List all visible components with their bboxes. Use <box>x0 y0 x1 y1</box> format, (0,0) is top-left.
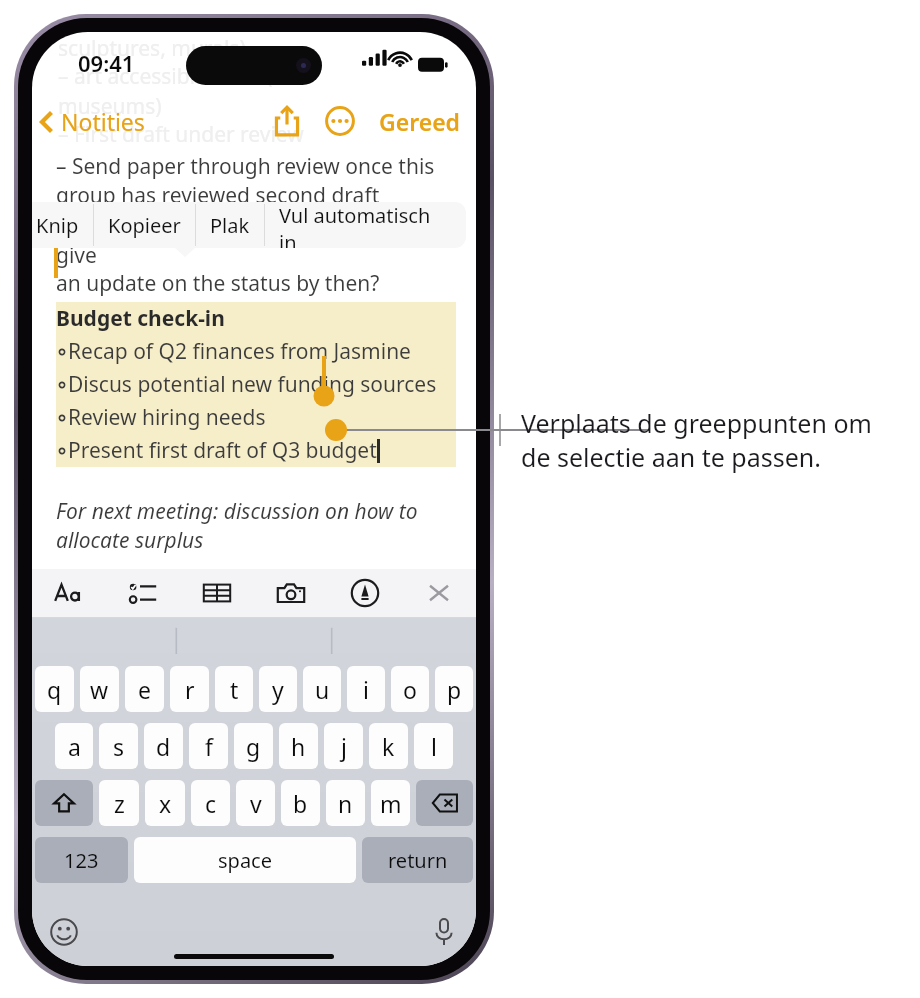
button[interactable]: Knip <box>32 202 93 248</box>
button[interactable]: r <box>170 666 209 712</box>
staticText: j <box>341 731 347 762</box>
staticText: an update on the status by then? <box>56 269 380 298</box>
button[interactable]: u <box>303 666 341 712</box>
button[interactable]: d <box>144 723 183 769</box>
staticText: – First draft under review <box>58 120 304 149</box>
button[interactable]: Vul automatisch in <box>265 202 466 248</box>
button[interactable]: h <box>279 723 318 769</box>
staticText: Discus potential new funding sources <box>68 370 437 399</box>
staticText: Plak <box>210 212 250 239</box>
button[interactable]: c <box>191 780 230 826</box>
button[interactable]: Emoji <box>46 914 82 950</box>
staticText: Verplaats de greeppunten om de selectie … <box>521 406 920 474</box>
button[interactable]: s <box>99 723 138 769</box>
staticText: f <box>205 731 213 762</box>
button[interactable]: e <box>125 666 164 712</box>
staticText: g <box>246 731 261 762</box>
button[interactable]: n <box>326 780 365 826</box>
staticText: For next meeting: discussion on how to <box>56 497 418 526</box>
button[interactable]: m <box>371 780 410 826</box>
staticText: Present first draft of Q3 budget <box>68 436 377 465</box>
button[interactable]: Sluit <box>420 574 458 612</box>
staticText: – Present to city council in Q4! Can you… <box>56 210 464 269</box>
button[interactable]: g <box>234 723 273 769</box>
button[interactable]: Meer <box>321 102 359 140</box>
button[interactable]: t <box>215 666 253 712</box>
button[interactable]: Dicteren <box>426 914 462 950</box>
staticText: s <box>113 731 125 762</box>
staticText: n <box>338 788 353 819</box>
button[interactable]: Deel <box>269 100 305 142</box>
button[interactable]: q <box>35 666 74 712</box>
staticText: Kopieer <box>108 212 181 239</box>
button[interactable]: w <box>80 666 119 712</box>
staticText: a <box>68 731 81 762</box>
button[interactable]: Markeringen <box>346 574 384 612</box>
staticText: museums) <box>58 92 162 121</box>
staticText: c <box>205 788 217 819</box>
button[interactable]: b <box>281 780 320 826</box>
button[interactable]: f <box>189 723 228 769</box>
staticText: – art accessible to all (free <box>58 62 312 91</box>
staticText: Vul automatisch in <box>279 202 452 248</box>
button[interactable]: x <box>145 780 185 826</box>
staticText: p <box>447 674 462 705</box>
button[interactable]: Tekststijl <box>50 574 88 612</box>
staticText: Gereed <box>379 106 460 137</box>
staticText: i <box>363 674 369 705</box>
staticText: group has reviewed second draft <box>56 181 380 210</box>
staticText: allocate surplus <box>56 526 204 555</box>
staticText: b <box>293 788 308 819</box>
staticText: z <box>114 788 125 819</box>
staticText: o <box>403 674 417 705</box>
button[interactable]: p <box>435 666 473 712</box>
staticText: v <box>250 788 262 819</box>
staticText: Knip <box>36 212 79 239</box>
staticText: q <box>47 674 62 705</box>
button[interactable]: o <box>391 666 429 712</box>
staticText: x <box>159 788 172 819</box>
staticText: Review hiring needs <box>68 403 266 432</box>
staticText: 09:41 <box>78 48 135 78</box>
button[interactable]: l <box>414 723 453 769</box>
staticText: Recap of Q2 finances from Jasmine <box>68 337 411 366</box>
staticText: Notities <box>61 106 145 137</box>
staticText: d <box>156 731 171 762</box>
staticText: 123 <box>64 847 99 874</box>
staticText: k <box>382 731 395 762</box>
button[interactable]: a <box>55 723 93 769</box>
button[interactable]: Checklist <box>124 574 162 612</box>
button[interactable]: i <box>347 666 385 712</box>
staticText: sculptures, murals) <box>58 34 246 63</box>
staticText: m <box>380 788 402 819</box>
button[interactable]: v <box>236 780 275 826</box>
button[interactable]: k <box>369 723 408 769</box>
button[interactable]: Shift <box>35 780 93 826</box>
button[interactable]: Backspace <box>416 780 473 826</box>
button[interactable]: Plak <box>196 202 264 248</box>
staticText: – Send paper through review once this <box>56 152 435 181</box>
staticText: r <box>185 674 195 705</box>
button[interactable]: j <box>324 723 363 769</box>
button[interactable]: Camera <box>272 574 310 612</box>
button[interactable]: Kopieer <box>94 202 195 248</box>
button[interactable]: space <box>134 837 356 883</box>
staticText: space <box>218 847 272 874</box>
staticText: y <box>272 674 284 705</box>
staticText: t <box>230 674 239 705</box>
staticText: h <box>291 731 306 762</box>
button[interactable]: Notities <box>32 102 153 141</box>
button[interactable]: return <box>362 837 473 883</box>
staticText: Budget check-in <box>56 304 225 333</box>
button[interactable]: Gereed <box>373 102 466 141</box>
staticText: e <box>138 674 151 705</box>
staticText: return <box>388 847 448 874</box>
staticText: w <box>90 674 109 705</box>
staticText: u <box>315 674 330 705</box>
button[interactable]: y <box>259 666 297 712</box>
button[interactable]: 123 <box>35 837 128 883</box>
button[interactable]: Tabel <box>198 574 236 612</box>
staticText: l <box>431 731 437 762</box>
button[interactable]: z <box>99 780 139 826</box>
